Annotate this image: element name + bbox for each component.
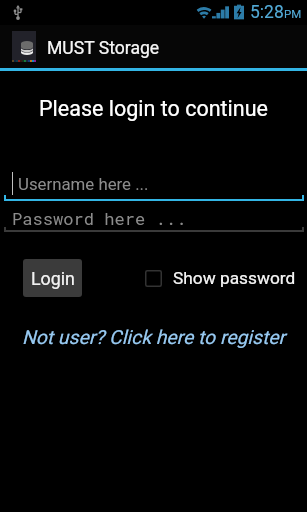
other: USB connected bbox=[13, 5, 23, 20]
staticText: 5:28 bbox=[250, 2, 284, 23]
staticText: Show password bbox=[173, 268, 296, 288]
button[interactable]: Username here ... bbox=[4, 170, 304, 200]
button[interactable]: App icon bbox=[12, 31, 36, 62]
staticText: Login bbox=[31, 268, 75, 289]
staticText: Password here ... bbox=[12, 207, 187, 230]
button[interactable]: Login bbox=[23, 259, 82, 297]
button[interactable]: Show password bbox=[145, 265, 296, 291]
staticText: Please login to continue bbox=[0, 96, 307, 121]
other: Wi-Fi bbox=[196, 5, 212, 19]
button[interactable]: Not user? Click here to register bbox=[0, 326, 307, 349]
other: Battery charging bbox=[234, 4, 244, 20]
staticText: Username here ... bbox=[18, 174, 149, 194]
staticText: MUST Storage bbox=[47, 38, 160, 59]
button[interactable]: Password here ... bbox=[4, 205, 304, 231]
other: Signal strength bbox=[212, 5, 229, 19]
staticText: PM bbox=[284, 7, 302, 20]
